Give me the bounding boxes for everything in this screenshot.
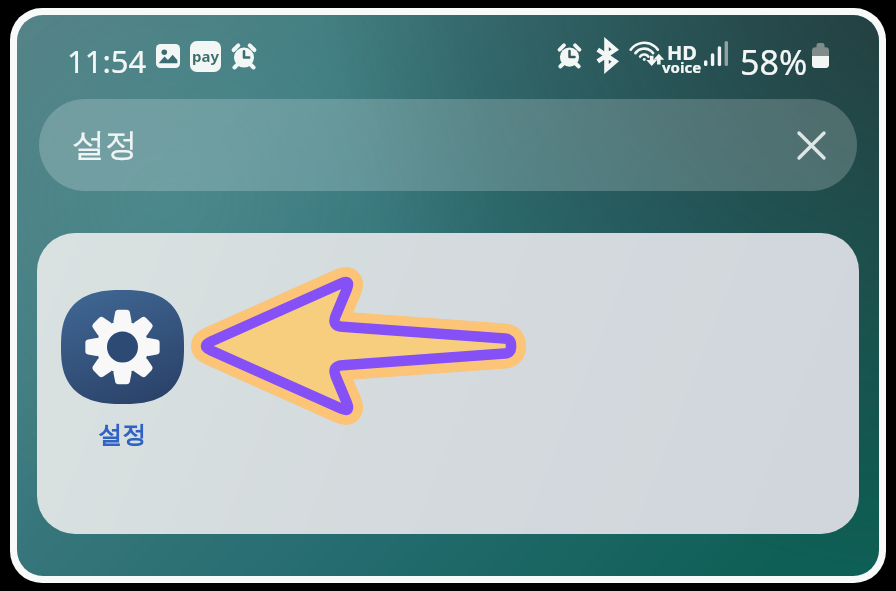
button[interactable]: Clear search bbox=[786, 120, 836, 170]
staticText: 설정 bbox=[72, 124, 138, 166]
staticText: voice bbox=[662, 57, 702, 77]
button[interactable]: 설정 bbox=[58, 290, 186, 450]
staticText: pay bbox=[192, 46, 220, 66]
staticText: 11:54 bbox=[67, 40, 147, 82]
staticText: 설정 bbox=[98, 420, 146, 450]
button[interactable]: 설정 bbox=[39, 99, 857, 191]
staticText: HD bbox=[667, 39, 697, 66]
staticText: 58% bbox=[740, 39, 808, 85]
